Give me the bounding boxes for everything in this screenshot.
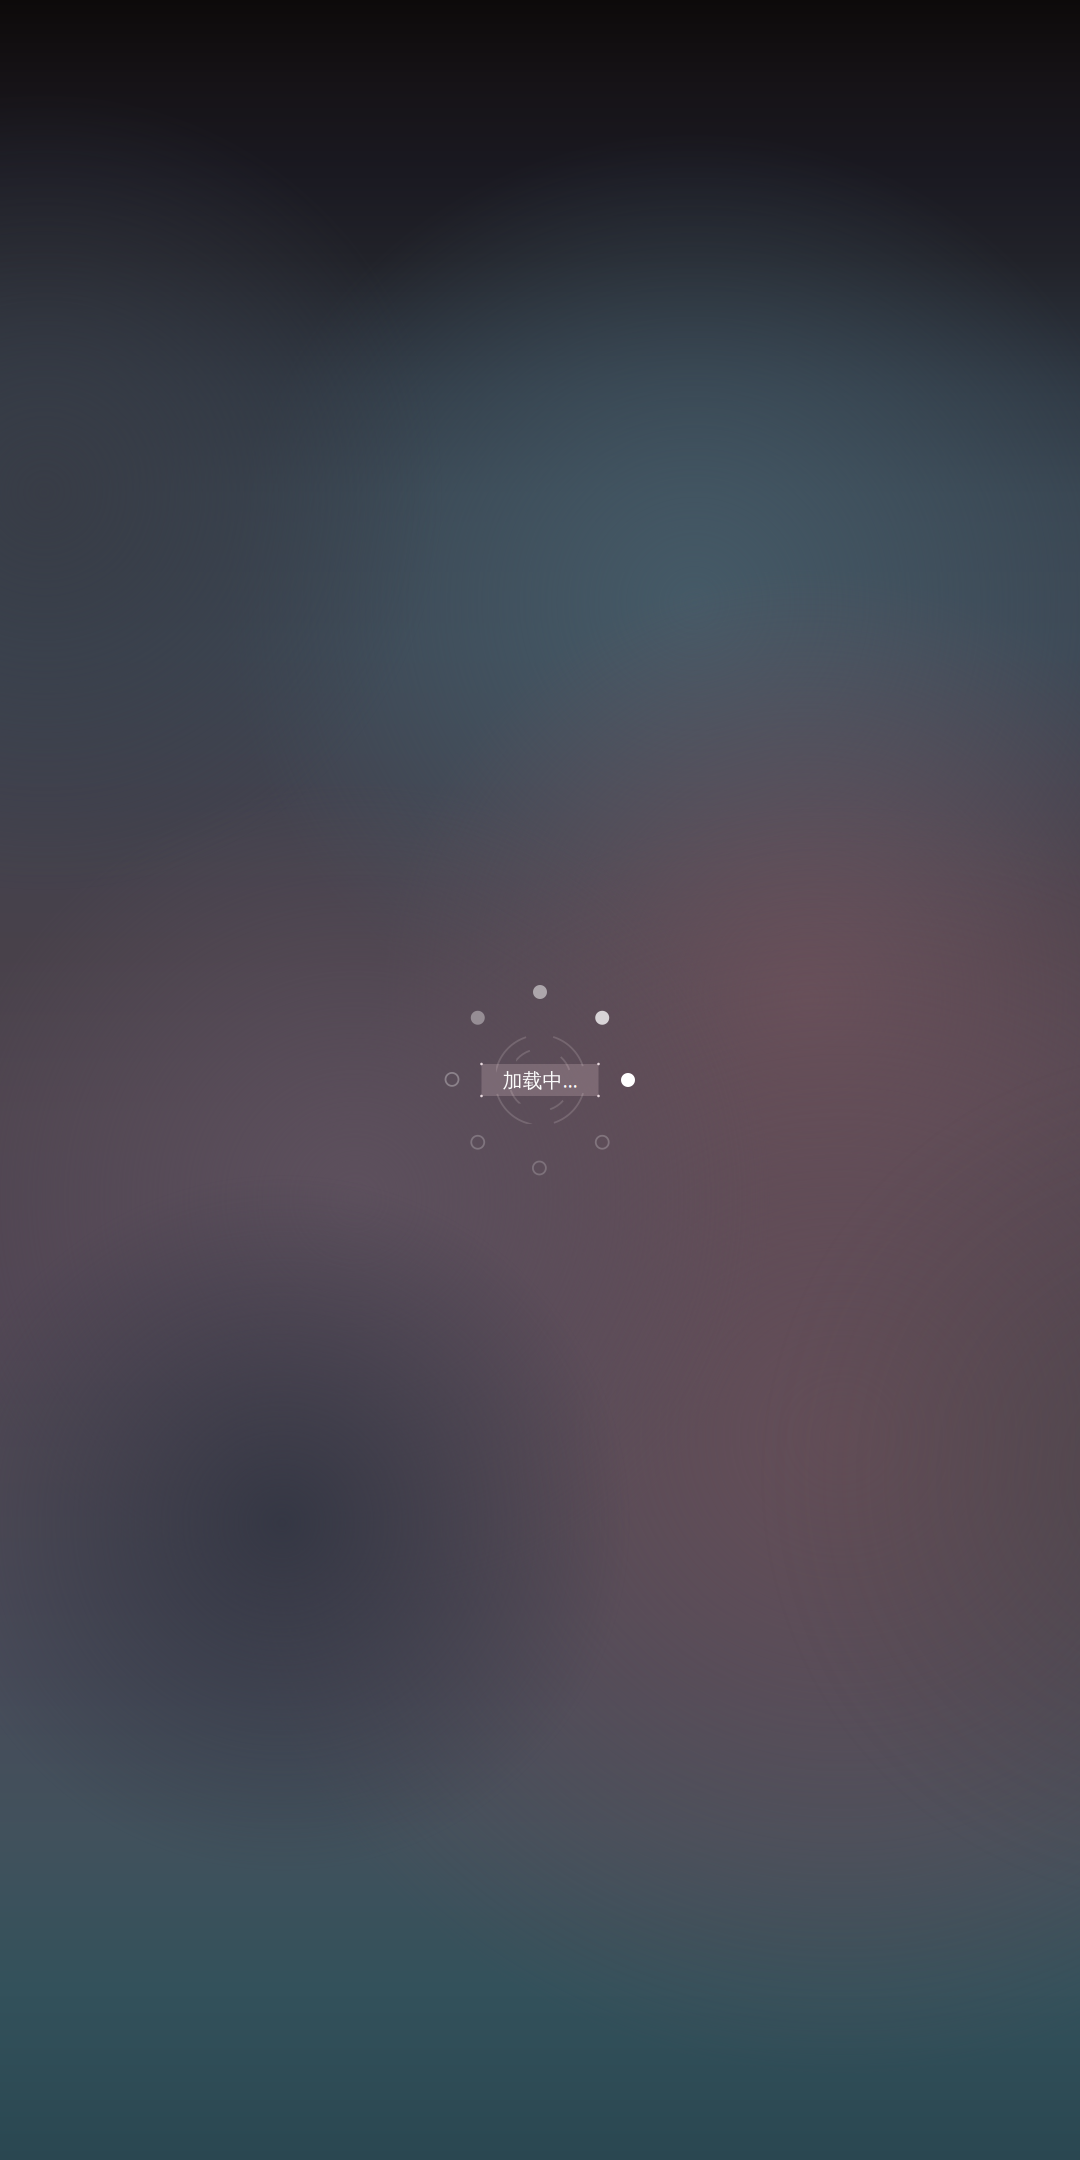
staticText: 加载中... <box>502 1067 577 1093</box>
